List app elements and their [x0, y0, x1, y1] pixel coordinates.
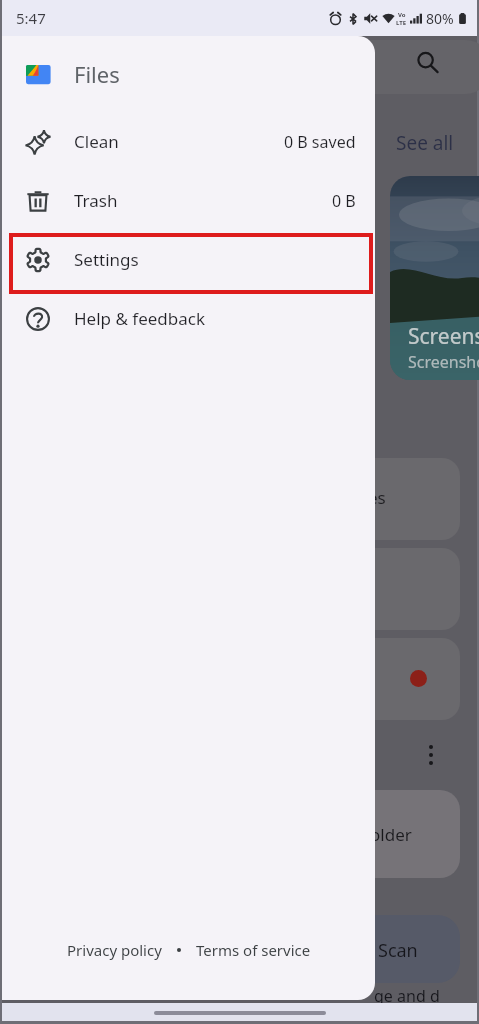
staticText: Vo — [398, 11, 406, 19]
staticText: 80% — [426, 9, 454, 28]
staticText: 5:47 — [16, 8, 46, 28]
button[interactable]: Privacy policy — [65, 938, 164, 962]
staticText: Clean — [74, 130, 119, 153]
staticText: ge and d — [374, 985, 440, 1007]
staticText: Trash — [74, 189, 118, 212]
staticText: Settings — [74, 248, 139, 271]
staticText: See all — [396, 130, 454, 156]
staticText: Scan — [378, 938, 418, 963]
staticText: Screenshots — [408, 351, 479, 373]
staticText: 0 B — [332, 190, 356, 212]
staticText: older — [370, 823, 412, 846]
staticText: Files — [74, 59, 120, 89]
staticText: Screens... — [408, 322, 479, 351]
button[interactable]: Help & feedback — [2, 289, 375, 348]
button[interactable]: Trash — [2, 171, 375, 230]
button[interactable]: Settings — [2, 230, 375, 289]
button[interactable]: Clean — [2, 112, 375, 171]
staticText: Help & feedback — [74, 307, 206, 330]
staticText: es — [368, 486, 386, 509]
staticText: 0 B saved — [284, 131, 356, 153]
staticText: LTE — [396, 19, 407, 27]
button[interactable]: Terms of service — [194, 938, 313, 962]
button[interactable]: Search — [292, 40, 479, 94]
